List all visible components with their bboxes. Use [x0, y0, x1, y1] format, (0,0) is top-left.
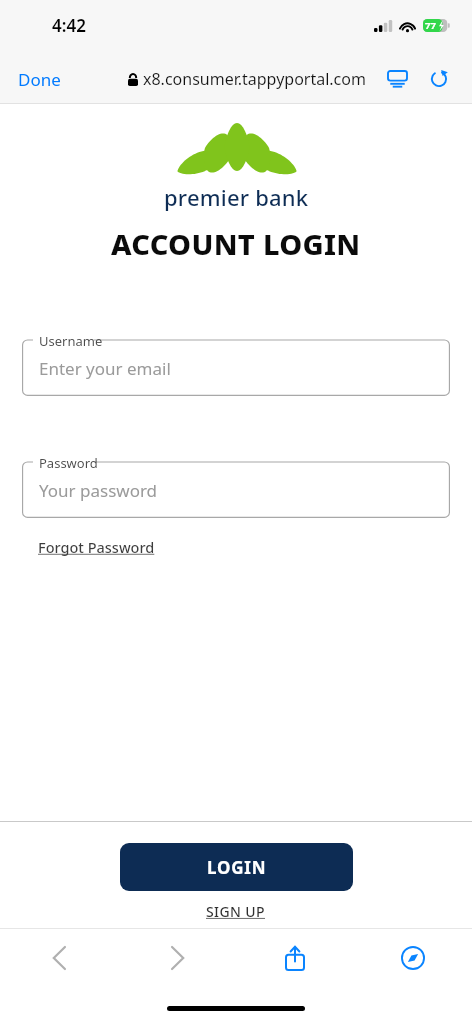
button[interactable]: Password	[22, 448, 450, 518]
button[interactable]: Username	[22, 326, 450, 396]
staticText: 77	[425, 19, 436, 32]
button[interactable]: Bookmarks	[354, 929, 472, 987]
button[interactable]: Done	[18, 68, 61, 91]
staticText: 4:42	[52, 14, 86, 37]
staticText: premier bank	[164, 182, 309, 212]
staticText: Forgot Password	[38, 537, 155, 557]
button[interactable]: x8.consumer.tappyportal.com	[128, 68, 366, 90]
staticText: ACCOUNT LOGIN	[111, 224, 361, 263]
staticText: x8.consumer.tappyportal.com	[143, 68, 366, 90]
button[interactable]: Back	[0, 929, 118, 987]
button[interactable]: LOGIN	[120, 843, 353, 891]
button[interactable]: SIGN UP	[206, 902, 266, 921]
staticText: Your password	[39, 479, 158, 502]
button[interactable]: Forward	[118, 929, 236, 987]
button[interactable]: Forgot Password	[38, 537, 155, 557]
staticText: Done	[18, 68, 61, 91]
staticText: Password	[39, 454, 98, 472]
staticText: SIGN UP	[206, 902, 266, 921]
button[interactable]: Share	[236, 929, 354, 987]
staticText: LOGIN	[207, 856, 267, 879]
button[interactable]: Reader view	[380, 62, 414, 96]
staticText: Username	[39, 332, 103, 350]
button[interactable]: Reload	[422, 62, 456, 96]
staticText: Enter your email	[39, 357, 171, 380]
